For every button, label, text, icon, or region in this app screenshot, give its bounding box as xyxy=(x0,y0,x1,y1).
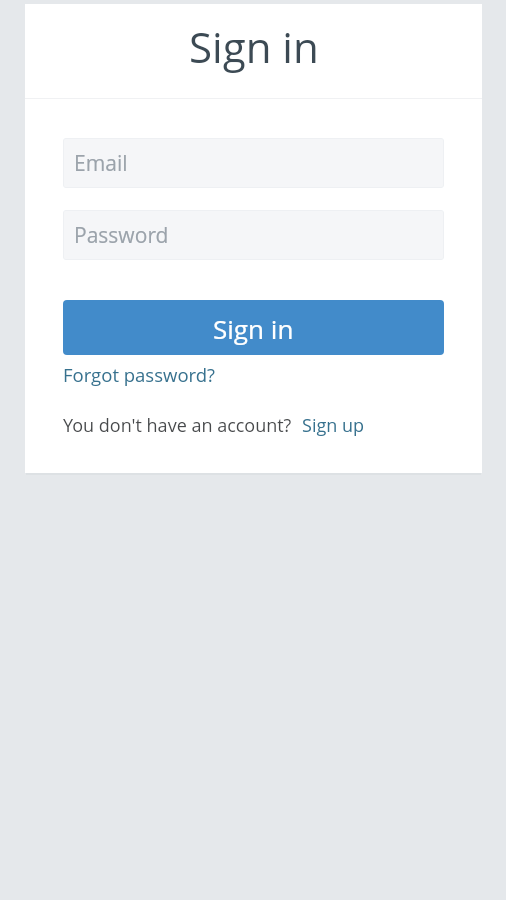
staticText: Email xyxy=(74,149,128,178)
button[interactable]: Sign in xyxy=(63,300,444,355)
button[interactable]: Sign up xyxy=(302,413,365,438)
staticText: Password xyxy=(74,221,169,250)
staticText: Sign in xyxy=(189,18,319,75)
button[interactable]: Forgot password? xyxy=(63,362,216,387)
button[interactable]: Email xyxy=(63,138,444,188)
button[interactable]: Password xyxy=(63,210,444,260)
staticText: Sign in xyxy=(213,311,294,346)
staticText: Forgot password? xyxy=(63,362,216,387)
staticText: You don't have an account? xyxy=(63,413,292,438)
staticText: Sign up xyxy=(302,413,365,438)
